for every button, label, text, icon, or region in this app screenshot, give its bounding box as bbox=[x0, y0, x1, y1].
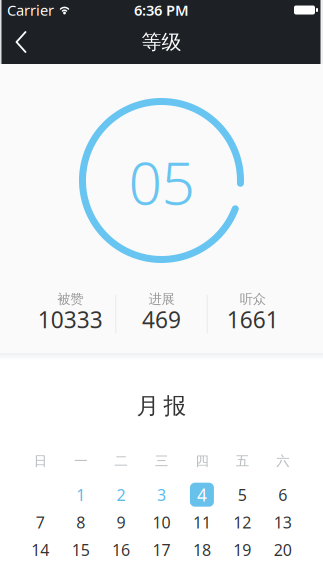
staticText: 月 bbox=[136, 392, 159, 420]
staticText: 5 bbox=[238, 484, 247, 505]
staticText: 一 bbox=[74, 453, 87, 469]
staticText: 6:36 PM bbox=[134, 0, 189, 20]
staticText: 11 bbox=[193, 512, 211, 533]
staticText: 六 bbox=[276, 453, 289, 469]
button[interactable]: 2 bbox=[110, 483, 133, 506]
staticText: 被赞 bbox=[57, 291, 83, 307]
staticText: 9 bbox=[117, 512, 126, 533]
staticText: 05 bbox=[128, 143, 194, 221]
staticText: 1 bbox=[76, 484, 85, 505]
staticText: 进展 bbox=[148, 291, 174, 307]
staticText: 19 bbox=[233, 539, 251, 560]
staticText: 10333 bbox=[38, 304, 103, 334]
button[interactable]: Back bbox=[0, 25, 36, 59]
staticText: 3 bbox=[157, 484, 166, 505]
staticText: 4 bbox=[197, 483, 207, 506]
staticText: 10 bbox=[152, 512, 170, 533]
button[interactable]: 3 bbox=[150, 483, 173, 506]
staticText: 7 bbox=[36, 512, 45, 533]
staticText: Carrier bbox=[7, 0, 54, 20]
staticText: 二 bbox=[115, 453, 128, 469]
staticText: 三 bbox=[155, 453, 168, 469]
staticText: 6 bbox=[278, 484, 287, 505]
staticText: 14 bbox=[31, 539, 49, 560]
staticText: 469 bbox=[142, 304, 181, 334]
staticText: 16 bbox=[112, 539, 130, 560]
staticText: 20 bbox=[274, 539, 292, 560]
staticText: 12 bbox=[233, 512, 251, 533]
staticText: 13 bbox=[274, 512, 292, 533]
staticText: 四 bbox=[195, 453, 208, 469]
staticText: 17 bbox=[152, 539, 170, 560]
staticText: 等级 bbox=[141, 30, 181, 54]
staticText: 日 bbox=[34, 453, 47, 469]
staticText: 报 bbox=[163, 392, 186, 420]
staticText: 听众 bbox=[240, 291, 266, 307]
staticText: 2 bbox=[117, 484, 126, 505]
button[interactable]: 1 bbox=[69, 483, 92, 506]
staticText: 五 bbox=[236, 453, 249, 469]
staticText: 1661 bbox=[227, 304, 279, 334]
staticText: 8 bbox=[76, 512, 85, 533]
button[interactable]: 4 bbox=[190, 483, 214, 507]
staticText: 15 bbox=[72, 539, 90, 560]
staticText: 18 bbox=[193, 539, 211, 560]
